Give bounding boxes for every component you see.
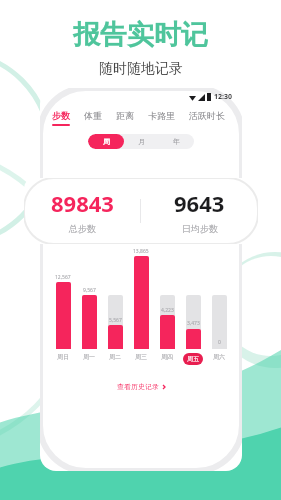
button[interactable]: 活跃时长 xyxy=(189,108,225,126)
button[interactable]: 年 xyxy=(159,134,194,149)
staticText: 周 xyxy=(103,137,110,146)
staticText: 总步数 xyxy=(69,223,96,234)
staticText: 日均步数 xyxy=(182,223,218,234)
staticText: 周六 xyxy=(213,353,225,361)
staticText: 月 xyxy=(138,137,145,146)
button[interactable]: 周四 xyxy=(154,353,180,361)
button[interactable]: 距离 xyxy=(116,108,134,126)
button[interactable]: 3,473 xyxy=(180,241,206,349)
button[interactable]: 12,567 xyxy=(50,241,76,349)
button[interactable]: 体重 xyxy=(84,108,102,126)
staticText: 5,567 xyxy=(109,317,122,324)
staticText: 周三 xyxy=(135,353,147,361)
staticText: 卡路里 xyxy=(148,110,175,121)
button[interactable]: 查看历史记录 xyxy=(111,379,172,394)
button[interactable]: 13,865 xyxy=(128,241,154,349)
staticText: 周五 xyxy=(187,355,199,363)
button[interactable]: 步数 xyxy=(52,108,70,128)
button[interactable]: 5,567 xyxy=(102,241,128,349)
button[interactable]: 周二 xyxy=(102,353,128,361)
staticText: 9643 xyxy=(174,188,225,218)
button[interactable]: 周一 xyxy=(76,353,102,361)
button[interactable]: 月 xyxy=(124,134,159,149)
staticText: 13,865 xyxy=(133,248,149,255)
staticText: 周日 xyxy=(57,353,69,361)
button[interactable]: 0 xyxy=(206,241,232,349)
staticText: 步数 xyxy=(52,110,70,121)
staticText: 12,567 xyxy=(55,274,71,281)
staticText: 周二 xyxy=(109,353,121,361)
button[interactable]: 4,223 xyxy=(154,241,180,349)
staticText: 3,473 xyxy=(187,320,200,327)
staticText: 周四 xyxy=(161,353,173,361)
staticText: 4,223 xyxy=(161,307,174,314)
button[interactable]: 周三 xyxy=(128,353,154,361)
staticText: 报告实时记 xyxy=(73,18,208,52)
staticText: 89843 xyxy=(51,188,114,218)
staticText: 活跃时长 xyxy=(189,110,225,121)
button[interactable]: 9,567 xyxy=(76,241,102,349)
staticText: 查看历史记录 xyxy=(117,382,159,391)
staticText: 0 xyxy=(218,339,221,346)
button[interactable]: 9643 xyxy=(141,188,258,234)
staticText: 12:30 xyxy=(214,92,232,102)
staticText: 距离 xyxy=(116,110,134,121)
button[interactable]: 周日 xyxy=(50,353,76,361)
staticText: 年 xyxy=(173,137,180,146)
button[interactable]: 周五 xyxy=(180,353,206,365)
button[interactable]: 周六 xyxy=(206,353,232,361)
button[interactable]: 周 xyxy=(88,134,124,149)
staticText: 体重 xyxy=(84,110,102,121)
staticText: 随时随地记录 xyxy=(99,60,183,78)
button[interactable]: 卡路里 xyxy=(148,108,175,126)
button[interactable]: 89843 xyxy=(24,188,140,234)
staticText: 9,567 xyxy=(83,287,96,294)
staticText: 周一 xyxy=(83,353,95,361)
